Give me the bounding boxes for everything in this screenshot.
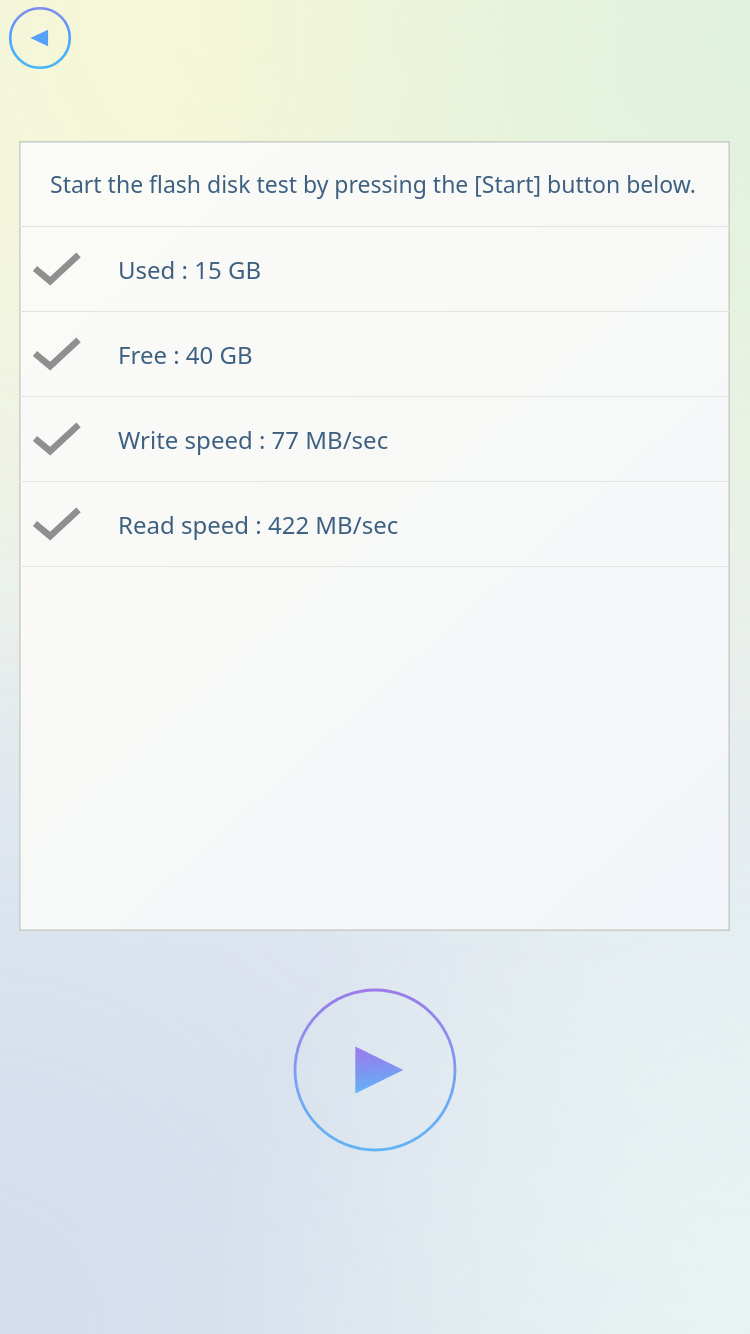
staticText: Read speed : 422 MB/sec: [118, 508, 399, 541]
button[interactable]: Free : 40 GB: [19, 312, 730, 396]
button[interactable]: Back: [8, 6, 72, 70]
staticText: Free : 40 GB: [118, 338, 253, 371]
staticText: Start the flash disk test by pressing th…: [50, 168, 696, 199]
button[interactable]: Used : 15 GB: [19, 227, 730, 311]
button[interactable]: Read speed : 422 MB/sec: [19, 482, 730, 566]
button[interactable]: Start: [290, 985, 460, 1155]
staticText: Used : 15 GB: [118, 253, 262, 286]
staticText: Write speed : 77 MB/sec: [118, 423, 389, 456]
button[interactable]: Write speed : 77 MB/sec: [19, 397, 730, 481]
